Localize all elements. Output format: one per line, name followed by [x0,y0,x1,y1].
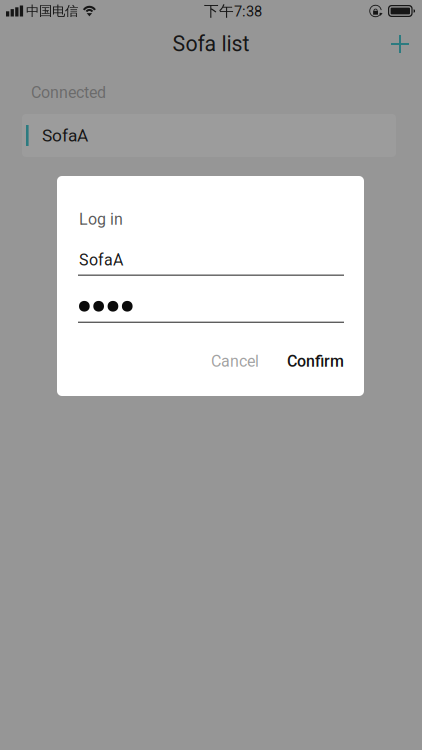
staticText: Sofa list [172,31,249,56]
staticText: Connected [31,83,106,102]
staticText: 中国电信 [26,3,78,19]
button[interactable]: Confirm [273,341,358,382]
staticText: SofaA [79,251,123,270]
staticText: Confirm [287,352,344,371]
button[interactable]: Cancel [197,341,273,382]
button[interactable]: Add sofa [378,22,422,66]
staticText: 下午7:38 [204,2,262,20]
staticText: Log in [79,210,123,229]
staticText: SofaA [42,125,88,146]
button[interactable]: SofaA [22,114,396,157]
staticText: Cancel [211,352,259,371]
